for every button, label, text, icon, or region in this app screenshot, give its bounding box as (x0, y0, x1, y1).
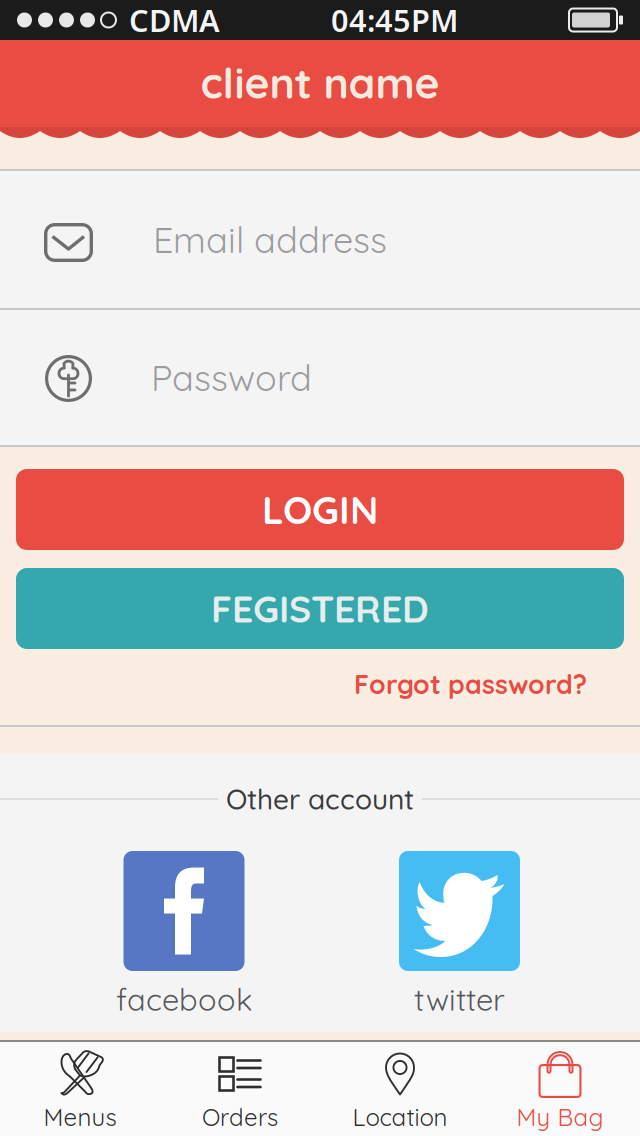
button[interactable]: FEGISTERED (16, 568, 624, 649)
staticText: Orders (202, 1102, 278, 1132)
staticText: twitter (414, 980, 505, 1018)
staticText: My Bag (516, 1102, 603, 1132)
staticText: Location (352, 1102, 447, 1132)
staticText: 04:45PM (331, 0, 458, 40)
button[interactable]: My Bag (480, 1042, 640, 1136)
staticText: FEGISTERED (211, 585, 429, 632)
staticText: facebook (116, 980, 252, 1018)
button[interactable]: facebook (116, 851, 252, 1018)
staticText: CDMA (129, 0, 220, 40)
staticText: Password (151, 355, 312, 400)
staticText: client name (200, 56, 439, 109)
button[interactable]: Password (0, 310, 640, 445)
staticText: LOGIN (262, 485, 378, 534)
button[interactable]: Orders (160, 1042, 320, 1136)
staticText: Email address (153, 217, 387, 262)
button[interactable]: LOGIN (16, 469, 624, 550)
staticText: Menus (43, 1102, 116, 1132)
button[interactable]: Menus (0, 1042, 160, 1136)
staticText: Forgot password? (354, 667, 587, 701)
button[interactable]: Email address (0, 171, 640, 308)
button[interactable]: Location (320, 1042, 480, 1136)
button[interactable]: Forgot password? (0, 649, 640, 719)
staticText: Other account (226, 781, 414, 816)
button[interactable]: twitter (399, 851, 520, 1018)
